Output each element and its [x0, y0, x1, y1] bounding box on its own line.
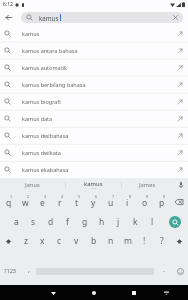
- staticText: ?123: [4, 267, 17, 275]
- staticText: j: [117, 216, 120, 228]
- button[interactable]: j: [110, 212, 127, 232]
- button[interactable]: Recent apps: [127, 286, 141, 300]
- button[interactable]: Shift: [0, 231, 17, 251]
- staticText: kamus: [84, 180, 103, 188]
- staticText: z: [24, 235, 28, 247]
- button[interactable]: k: [127, 212, 144, 232]
- button[interactable]: 5: [68, 192, 85, 212]
- staticText: f: [66, 216, 69, 228]
- staticText: kamus ekabahasa: [22, 166, 69, 173]
- staticText: d: [48, 216, 54, 228]
- staticText: 2: [27, 194, 30, 199]
- button[interactable]: d: [42, 212, 59, 232]
- staticText: y: [91, 197, 96, 209]
- staticText: 1: [10, 194, 13, 199]
- staticText: a: [14, 216, 19, 228]
- button[interactable]: Search: [161, 212, 188, 232]
- button[interactable]: 3: [34, 192, 51, 212]
- staticText: x: [40, 235, 45, 247]
- staticText: m: [124, 235, 132, 247]
- staticText: 7: [112, 194, 115, 199]
- staticText: w: [22, 197, 29, 209]
- staticText: s: [31, 216, 36, 228]
- button[interactable]: g: [76, 212, 93, 232]
- button[interactable]: b: [85, 231, 102, 251]
- button[interactable]: ?123: [0, 261, 21, 281]
- staticText: e: [40, 197, 45, 209]
- button[interactable]: Shift: [170, 231, 188, 251]
- button[interactable]: 9: [136, 192, 153, 212]
- button[interactable]: 0: [153, 192, 170, 212]
- staticText: k: [133, 216, 138, 228]
- staticText: .: [163, 265, 165, 275]
- button[interactable]: Home: [87, 286, 101, 300]
- button[interactable]: kamus dwibahasa: [0, 127, 188, 144]
- staticText: 9: [146, 194, 149, 199]
- button[interactable]: v: [68, 231, 85, 251]
- button[interactable]: z: [17, 231, 34, 251]
- staticText: v: [74, 235, 79, 247]
- button[interactable]: 7: [102, 192, 119, 212]
- button[interactable]: f: [59, 212, 76, 232]
- staticText: b: [91, 235, 97, 247]
- button[interactable]: ?: [153, 231, 170, 251]
- staticText: p: [159, 197, 165, 209]
- button[interactable]: kamus dwikata: [0, 144, 188, 161]
- button[interactable]: Back: [46, 286, 60, 300]
- staticText: kamus berbilang bahasa: [22, 81, 86, 88]
- staticText: Janus: [25, 181, 40, 189]
- staticText: t: [75, 197, 79, 209]
- button[interactable]: Hide keyboard: [159, 286, 173, 300]
- button[interactable]: James: [122, 178, 173, 191]
- button[interactable]: Emoji: [173, 261, 188, 281]
- button[interactable]: ,: [21, 261, 36, 281]
- button[interactable]: Clear query: [170, 12, 181, 23]
- button[interactable]: 2: [17, 192, 34, 212]
- button[interactable]: x: [34, 231, 51, 251]
- button[interactable]: kamus: [0, 25, 188, 42]
- button[interactable]: kamus ekabahasa: [0, 161, 188, 178]
- staticText: q: [6, 197, 12, 209]
- staticText: h: [99, 216, 105, 228]
- button[interactable]: s: [25, 212, 42, 232]
- button[interactable]: n: [102, 231, 119, 251]
- staticText: 3: [44, 194, 47, 199]
- button[interactable]: Backspace: [170, 192, 188, 212]
- staticText: 8: [129, 194, 132, 199]
- button[interactable]: .: [154, 261, 173, 281]
- staticText: g: [82, 216, 88, 228]
- staticText: kamus: [39, 14, 59, 22]
- button[interactable]: c: [51, 231, 68, 251]
- staticText: r: [58, 197, 62, 209]
- button[interactable]: 8: [119, 192, 136, 212]
- button[interactable]: 6: [85, 192, 102, 212]
- staticText: kamus data: [22, 115, 53, 122]
- button[interactable]: !: [136, 231, 153, 251]
- button[interactable]: kamus antara bahasa: [0, 42, 188, 59]
- button[interactable]: 1: [0, 192, 17, 212]
- button[interactable]: kamus: [21, 12, 183, 23]
- staticText: 6:12: [3, 1, 13, 8]
- button[interactable]: kamus data: [0, 110, 188, 127]
- button[interactable]: Voice input: [173, 178, 188, 191]
- button[interactable]: kamus: [66, 178, 121, 191]
- staticText: kamus dwibahasa: [22, 132, 69, 139]
- button[interactable]: Back: [0, 9, 17, 25]
- staticText: 5: [78, 194, 81, 199]
- button[interactable]: Janus: [0, 178, 65, 191]
- staticText: i: [126, 197, 129, 209]
- button[interactable]: 4: [51, 192, 68, 212]
- button[interactable]: h: [93, 212, 110, 232]
- staticText: o: [142, 197, 148, 209]
- staticText: James: [139, 181, 156, 189]
- staticText: kamus automatik: [22, 64, 67, 71]
- staticText: !: [143, 235, 146, 247]
- button[interactable]: kamus berbilang bahasa: [0, 76, 188, 93]
- button[interactable]: a: [8, 212, 25, 232]
- staticText: ?: [160, 235, 164, 247]
- button[interactable]: kamus biografi: [0, 93, 188, 110]
- button[interactable]: l: [144, 212, 161, 232]
- button[interactable]: kamus automatik: [0, 59, 188, 76]
- button[interactable]: m: [119, 231, 136, 251]
